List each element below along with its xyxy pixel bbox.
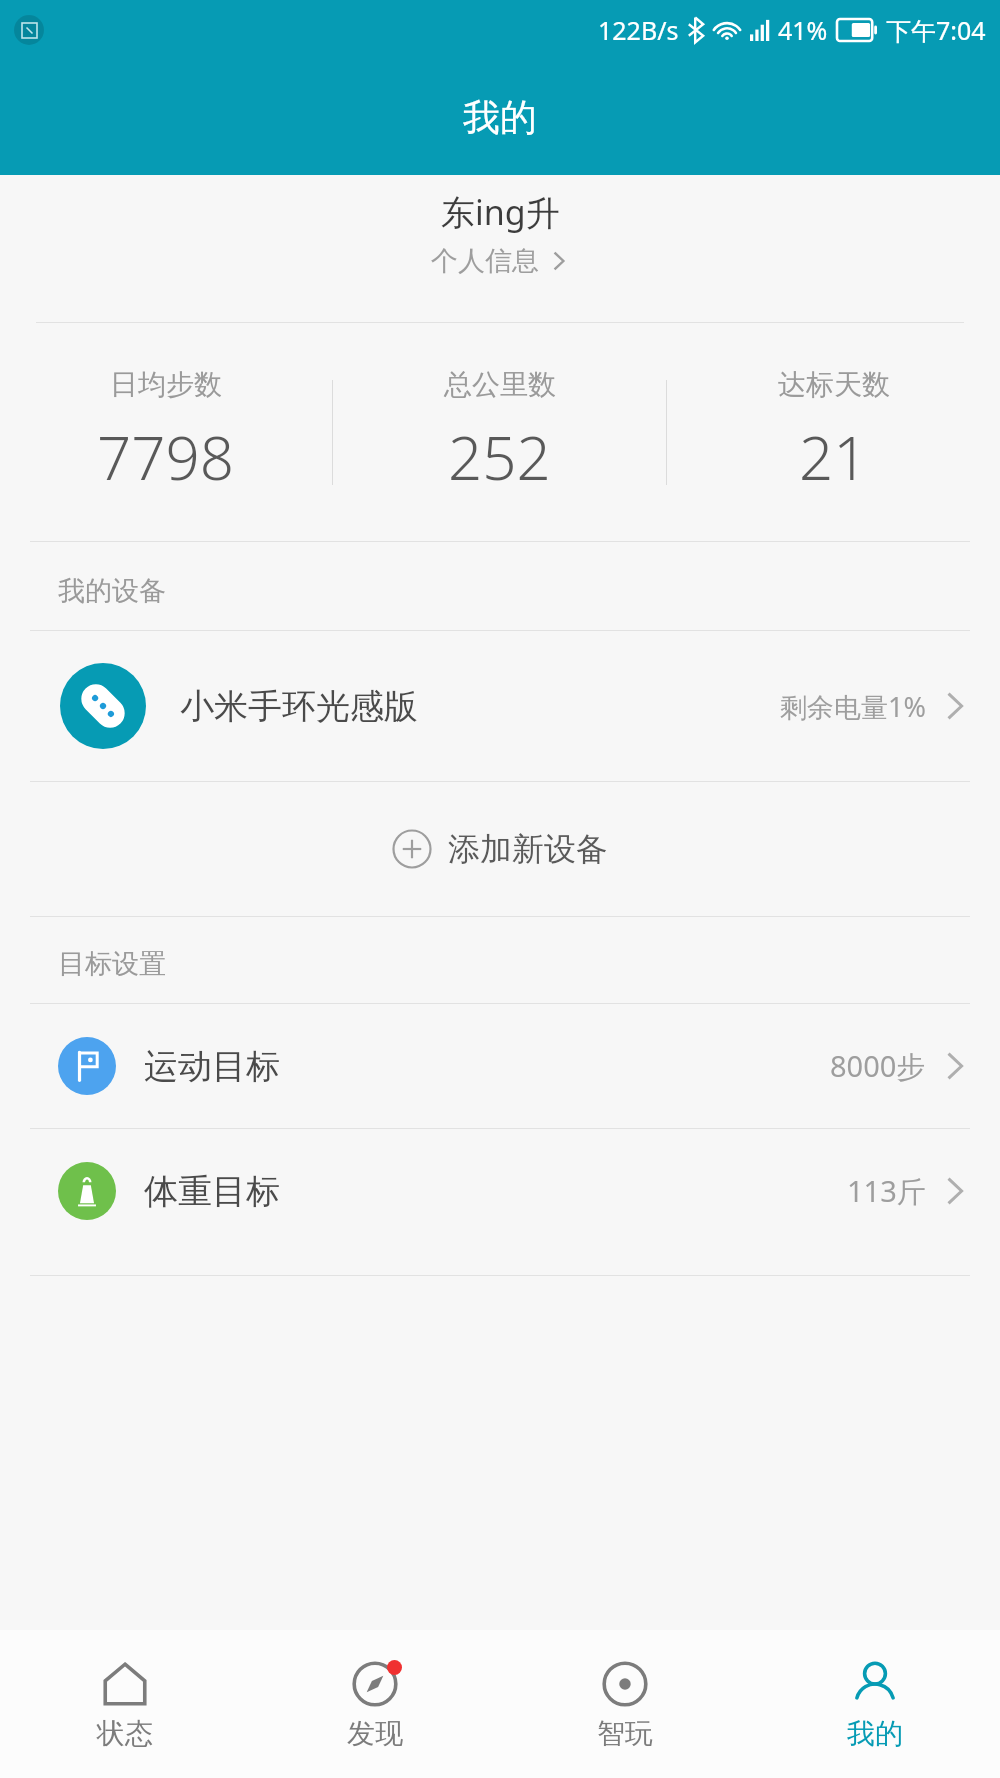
button[interactable]: 体重目标 <box>0 1129 1000 1253</box>
staticText: 我的 <box>463 94 537 141</box>
staticText: 状态 <box>97 1716 153 1751</box>
button[interactable]: 添加新设备 <box>0 782 1000 916</box>
staticText: 东ing升 <box>441 189 560 235</box>
staticText: 体重目标 <box>144 1170 280 1213</box>
button[interactable]: 发现 <box>250 1630 500 1778</box>
staticText: 添加新设备 <box>448 829 608 869</box>
staticText: 发现 <box>347 1716 403 1751</box>
button[interactable]: 我的 <box>750 1630 1000 1778</box>
staticText: 7798 <box>97 416 235 498</box>
button[interactable]: 智玩 <box>500 1630 750 1778</box>
button[interactable]: 小米手环光感版 <box>0 631 1000 781</box>
staticText: 剩余电量1% <box>780 688 926 725</box>
staticText: 运动目标 <box>144 1045 280 1088</box>
staticText: 日均步数 <box>110 367 222 402</box>
staticText: 41% <box>778 13 828 47</box>
staticText: 下午7:04 <box>886 13 986 47</box>
staticText: 智玩 <box>597 1716 653 1751</box>
staticText: 122B/s <box>598 13 679 47</box>
staticText: 个人信息 <box>431 244 539 278</box>
staticText: 达标天数 <box>778 367 890 402</box>
button[interactable]: 状态 <box>0 1630 250 1778</box>
button[interactable]: 运动目标 <box>0 1004 1000 1128</box>
staticText: 113斤 <box>847 1171 926 1211</box>
staticText: 8000步 <box>830 1046 926 1086</box>
button[interactable]: 东ing升 <box>0 175 1000 278</box>
staticText: 目标设置 <box>58 947 166 981</box>
staticText: 我的 <box>847 1716 903 1751</box>
staticText: 小米手环光感版 <box>180 685 418 728</box>
staticText: 我的设备 <box>58 574 166 608</box>
staticText: 21 <box>799 416 868 498</box>
staticText: 252 <box>448 416 551 498</box>
staticText: 总公里数 <box>444 367 556 402</box>
